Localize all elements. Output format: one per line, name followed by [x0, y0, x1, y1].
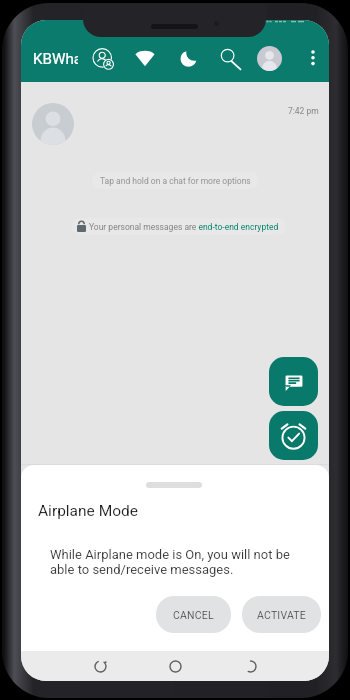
staticText: Airplane Mode [38, 502, 138, 520]
staticText: While Airplane mode is On, you will not … [50, 547, 300, 577]
button[interactable]: Search [220, 48, 241, 69]
staticText: 7:42 pm [288, 106, 319, 116]
button[interactable] [32, 103, 74, 145]
button[interactable]: ACTIVATE [242, 596, 321, 633]
button[interactable]: Status [135, 50, 155, 66]
button[interactable]: More options [301, 46, 325, 70]
button[interactable]: Scheduled messages [269, 411, 318, 460]
button[interactable]: New chat [269, 357, 318, 406]
button[interactable]: Contacts [93, 49, 114, 70]
button[interactable]: Recents [85, 654, 115, 678]
staticText: Tap and hold on a chat for more options [100, 176, 251, 186]
button[interactable]: Profile [257, 46, 282, 71]
button[interactable]: Dark mode [179, 49, 198, 68]
staticText: Your personal messages are end-to-end en… [89, 222, 279, 232]
button[interactable]: Back [235, 654, 265, 678]
staticText: ACTIVATE [257, 609, 306, 621]
staticText: CANCEL [173, 609, 214, 621]
staticText: KBWhatsApp [33, 50, 78, 68]
button[interactable]: Home [160, 654, 190, 678]
button[interactable]: CANCEL [156, 596, 231, 633]
